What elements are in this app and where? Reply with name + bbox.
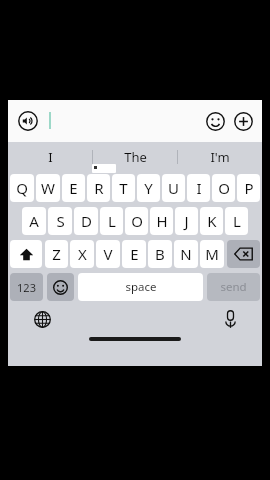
staticText: N bbox=[180, 244, 192, 264]
button[interactable]: Shift bbox=[10, 240, 42, 268]
staticText: M bbox=[205, 244, 219, 264]
staticText: H bbox=[156, 211, 168, 231]
button[interactable]: The bbox=[93, 142, 177, 171]
staticText: J bbox=[184, 211, 189, 231]
button[interactable]: A bbox=[22, 207, 46, 235]
staticText: L bbox=[233, 211, 241, 231]
button[interactable]: Emoji keyboard bbox=[47, 273, 74, 301]
staticText: V bbox=[103, 244, 113, 264]
button[interactable]: N bbox=[174, 240, 198, 268]
staticText: B bbox=[155, 244, 165, 264]
staticText: D bbox=[81, 211, 92, 231]
staticText: send bbox=[220, 279, 247, 295]
button[interactable]: Audio message bbox=[15, 108, 41, 134]
button[interactable]: Voice input bbox=[218, 307, 242, 331]
button[interactable]: 123 bbox=[10, 273, 43, 301]
button[interactable]: space bbox=[78, 273, 203, 301]
staticText: A bbox=[29, 211, 39, 231]
button[interactable]: send bbox=[207, 273, 260, 301]
button[interactable]: J bbox=[175, 207, 198, 235]
button[interactable]: E bbox=[62, 174, 85, 202]
staticText: O bbox=[131, 211, 143, 231]
staticText: K bbox=[207, 211, 217, 231]
button[interactable]: I bbox=[8, 142, 92, 171]
button[interactable]: B bbox=[148, 240, 172, 268]
staticText: X bbox=[78, 244, 87, 264]
button[interactable]: O bbox=[212, 174, 235, 202]
staticText: R bbox=[94, 178, 104, 198]
staticText: I'm bbox=[210, 148, 230, 166]
button[interactable]: Emoji bbox=[202, 108, 228, 134]
button[interactable]: D bbox=[74, 207, 98, 235]
button[interactable]: I'm bbox=[178, 142, 262, 171]
staticText: I bbox=[196, 178, 202, 198]
button[interactable]: U bbox=[162, 174, 185, 202]
button[interactable]: Add attachment bbox=[230, 108, 256, 134]
button[interactable]: K bbox=[200, 207, 223, 235]
staticText: U bbox=[168, 178, 179, 198]
button[interactable]: R bbox=[87, 174, 110, 202]
staticText: S bbox=[56, 211, 65, 231]
button[interactable]: I bbox=[187, 174, 210, 202]
button[interactable]: X bbox=[70, 240, 94, 268]
button[interactable]: O bbox=[125, 207, 148, 235]
staticText: T bbox=[119, 178, 128, 198]
staticText: 123 bbox=[17, 280, 36, 295]
button[interactable]: T bbox=[112, 174, 135, 202]
staticText: P bbox=[244, 178, 254, 198]
button[interactable]: Y bbox=[137, 174, 160, 202]
button[interactable]: E bbox=[122, 240, 146, 268]
button[interactable]: P bbox=[237, 174, 260, 202]
staticText: O bbox=[218, 178, 230, 198]
staticText: I bbox=[48, 148, 53, 166]
button[interactable]: Switch keyboard language bbox=[30, 307, 54, 331]
button[interactable]: L bbox=[225, 207, 248, 235]
staticText: Z bbox=[52, 244, 61, 264]
button[interactable]: Backspace bbox=[227, 240, 260, 268]
button[interactable]: Q bbox=[10, 174, 34, 202]
staticText: E bbox=[69, 178, 78, 198]
button[interactable]: Z bbox=[45, 240, 68, 268]
staticText: Q bbox=[16, 178, 28, 198]
button[interactable]: H bbox=[150, 207, 173, 235]
staticText: L bbox=[108, 211, 116, 231]
staticText: E bbox=[130, 244, 139, 264]
staticText: The bbox=[124, 148, 147, 166]
staticText: W bbox=[41, 178, 55, 198]
staticText: space bbox=[125, 279, 157, 295]
button[interactable]: L bbox=[100, 207, 123, 235]
button[interactable]: S bbox=[48, 207, 72, 235]
button[interactable]: V bbox=[96, 240, 120, 268]
button[interactable]: W bbox=[36, 174, 60, 202]
staticText: Y bbox=[144, 178, 153, 198]
button[interactable]: M bbox=[200, 240, 224, 268]
